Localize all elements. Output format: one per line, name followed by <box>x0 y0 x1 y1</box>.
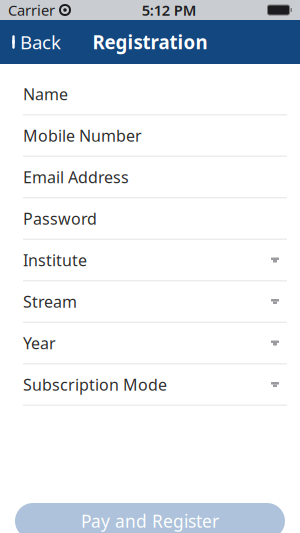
button[interactable]: Pay and Register <box>15 503 285 533</box>
button[interactable]: Year <box>0 323 300 364</box>
staticText: 5:12 PM <box>142 0 197 20</box>
button[interactable]: Stream <box>0 281 300 323</box>
staticText: Back <box>20 30 61 54</box>
button[interactable]: Password <box>0 198 300 240</box>
staticText: Password <box>23 208 97 229</box>
staticText: Subscription Mode <box>23 374 167 395</box>
staticText: Registration <box>92 30 207 54</box>
button[interactable]: Subscription Mode <box>0 364 300 406</box>
staticText: Carrier <box>8 0 55 20</box>
button[interactable]: Institute <box>0 240 300 281</box>
button[interactable]: Name <box>0 74 300 115</box>
staticText: Email Address <box>23 166 129 188</box>
staticText: Institute <box>23 249 87 271</box>
staticText: Pay and Register <box>81 509 219 532</box>
button[interactable]: Mobile Number <box>0 115 300 157</box>
staticText: Stream <box>23 291 77 312</box>
button[interactable]: Email Address <box>0 157 300 198</box>
staticText: Mobile Number <box>23 125 142 146</box>
staticText: Year <box>23 332 56 354</box>
button[interactable]: Back <box>0 20 71 64</box>
staticText: Name <box>23 83 68 105</box>
